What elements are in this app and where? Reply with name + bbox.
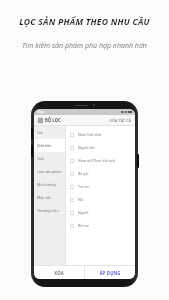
staticText: Nam nữ/Theo lứa tuổi [78,158,116,163]
other: Filter [38,118,43,123]
staticText: LỌC SẢN PHẨM THEO NHU CẦU [0,16,169,28]
button[interactable]: Mùi hương [34,178,65,191]
staticText: XÓA [54,270,64,276]
staticText: BỘ LỌC [45,117,61,123]
button[interactable]: XÓA TẤT CẢ [109,118,131,123]
button[interactable]: Nam nữ/Theo lứa tuổi [70,154,135,167]
button[interactable]: Trẻ em [70,180,135,193]
button[interactable]: Tuổi [34,152,65,165]
button[interactable]: Thương hiệu [34,204,65,217]
button[interactable]: XÓA [34,266,84,279]
button[interactable]: Nữ [70,193,135,206]
button[interactable]: Giới tính [34,139,65,152]
staticText: Giới tính [37,143,52,148]
button[interactable]: Loại sản phẩm [34,165,65,178]
staticText: Nữ [78,197,84,202]
staticText: Tuổi [37,156,45,161]
button[interactable]: Giá [34,126,65,139]
staticText: Màu sắc [37,195,51,200]
staticText: ÁP DỤNG [99,270,121,276]
button[interactable]: Bé trai [70,219,135,232]
button[interactable]: Người lớn [70,141,135,154]
staticText: Loại sản phẩm [37,169,62,174]
staticText: Trẻ em [78,184,90,189]
staticText: Nam Giới tính [78,132,102,137]
button[interactable]: Filter [38,117,61,123]
staticText: Giá [37,130,43,135]
button[interactable]: Bé gái [70,167,135,180]
staticText: Người [78,210,89,215]
button[interactable]: Nam Giới tính [70,128,135,141]
staticText: Bé trai [78,223,89,228]
staticText: Thương hiệu [37,208,59,213]
staticText: Tìm kiếm sản phẩm phù hợp nhanh hơn [0,41,169,51]
button[interactable]: ÁP DỤNG [85,266,135,279]
staticText: Người lớn [78,145,95,150]
staticText: Bé gái [78,171,89,176]
staticText: Mùi hương [37,182,56,187]
button[interactable]: Màu sắc [34,191,65,204]
button[interactable]: Người [70,206,135,219]
staticText: XÓA TẤT CẢ [109,118,131,123]
